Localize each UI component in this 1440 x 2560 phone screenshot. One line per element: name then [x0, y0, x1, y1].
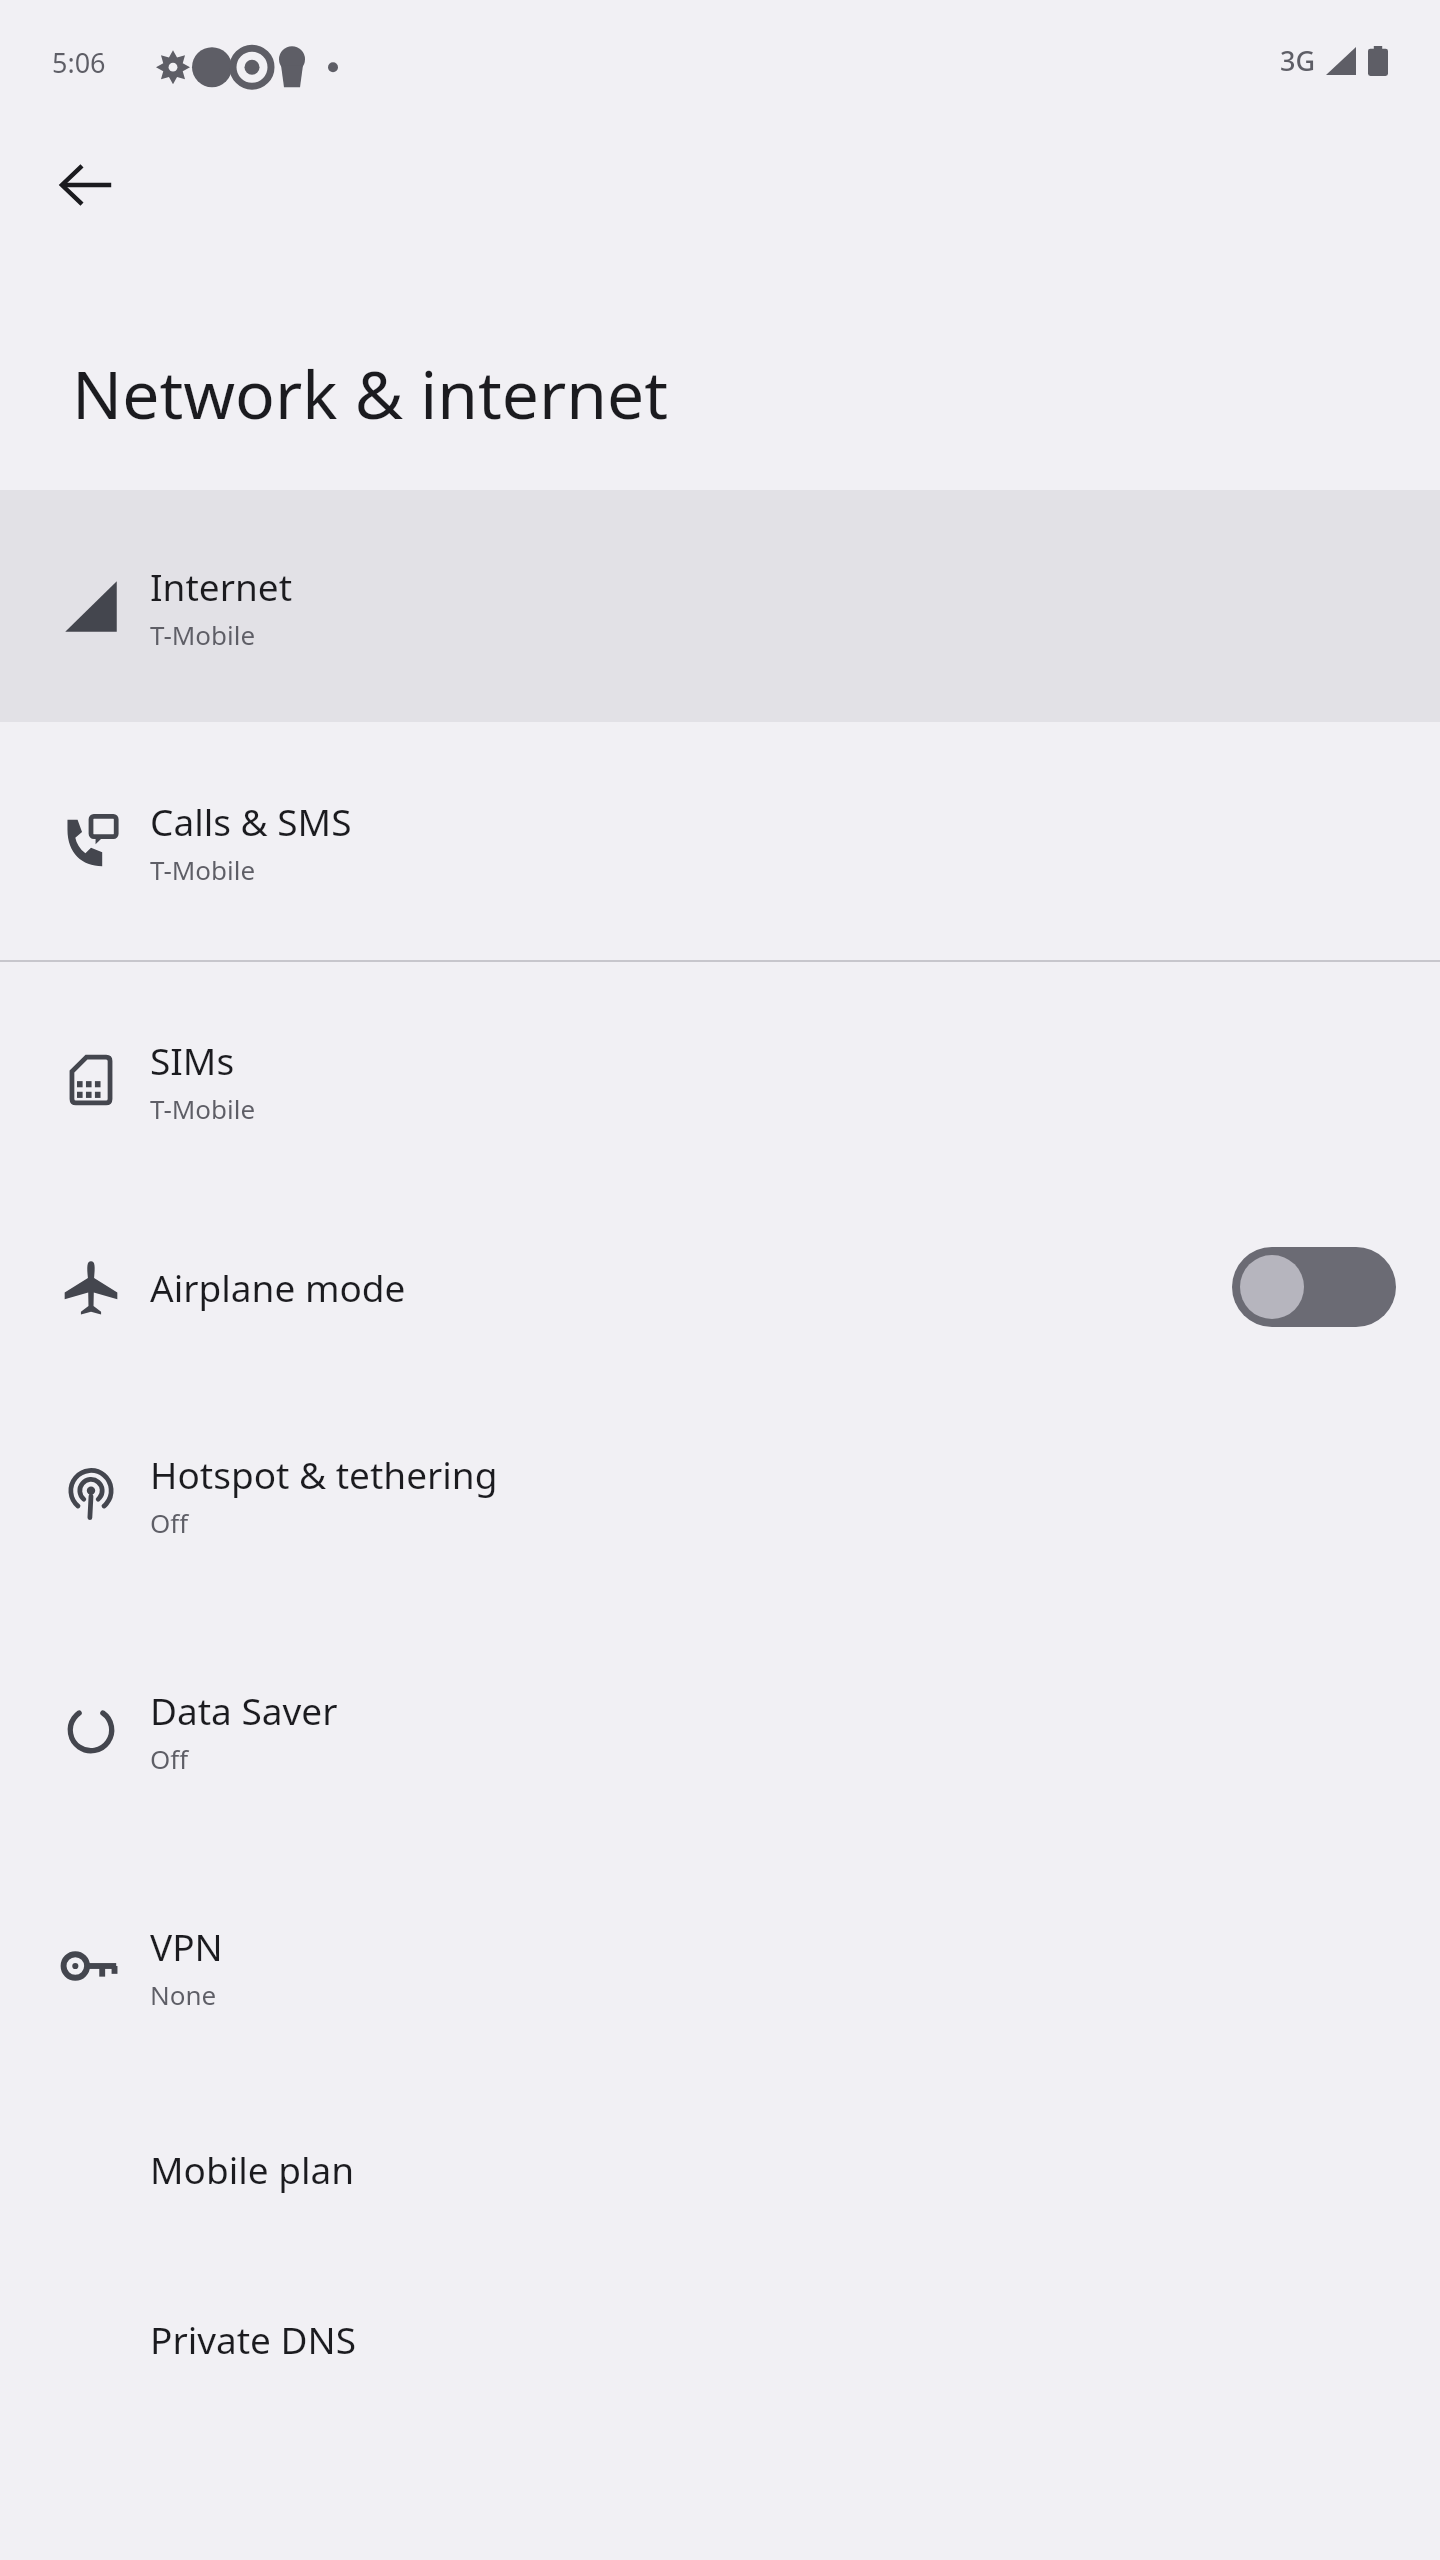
- staticText: Private DNS: [150, 2314, 357, 2364]
- button[interactable]: Back: [38, 137, 134, 233]
- button[interactable]: Airplane mode toggle: [1228, 1243, 1400, 1331]
- staticText: SIMs: [150, 1035, 235, 1085]
- staticText: T-Mobile: [150, 1091, 256, 1126]
- button[interactable]: SIMs: [0, 962, 1440, 1198]
- staticText: 5:06: [52, 44, 106, 81]
- button[interactable]: Internet: [0, 490, 1440, 722]
- staticText: T-Mobile: [150, 617, 256, 652]
- button[interactable]: Private DNS: [0, 2254, 1440, 2424]
- staticText: Hotspot & tethering: [150, 1449, 498, 1499]
- button[interactable]: Airplane mode: [0, 1198, 1440, 1376]
- staticText: Airplane mode: [150, 1262, 406, 1312]
- staticText: Network & internet: [72, 348, 669, 438]
- staticText: Internet: [150, 561, 293, 611]
- button[interactable]: Data Saver: [0, 1612, 1440, 1848]
- button[interactable]: VPN: [0, 1848, 1440, 2084]
- staticText: T-Mobile: [150, 852, 256, 887]
- staticText: VPN: [150, 1921, 223, 1971]
- staticText: Data Saver: [150, 1685, 338, 1735]
- staticText: Calls & SMS: [150, 796, 352, 846]
- staticText: Mobile plan: [150, 2144, 355, 2194]
- staticText: Off: [150, 1741, 189, 1776]
- staticText: 3G: [1280, 42, 1316, 79]
- staticText: Off: [150, 1505, 189, 1540]
- button[interactable]: Mobile plan: [0, 2084, 1440, 2254]
- button[interactable]: Calls & SMS: [0, 722, 1440, 960]
- staticText: None: [150, 1977, 217, 2012]
- button[interactable]: Hotspot & tethering: [0, 1376, 1440, 1612]
